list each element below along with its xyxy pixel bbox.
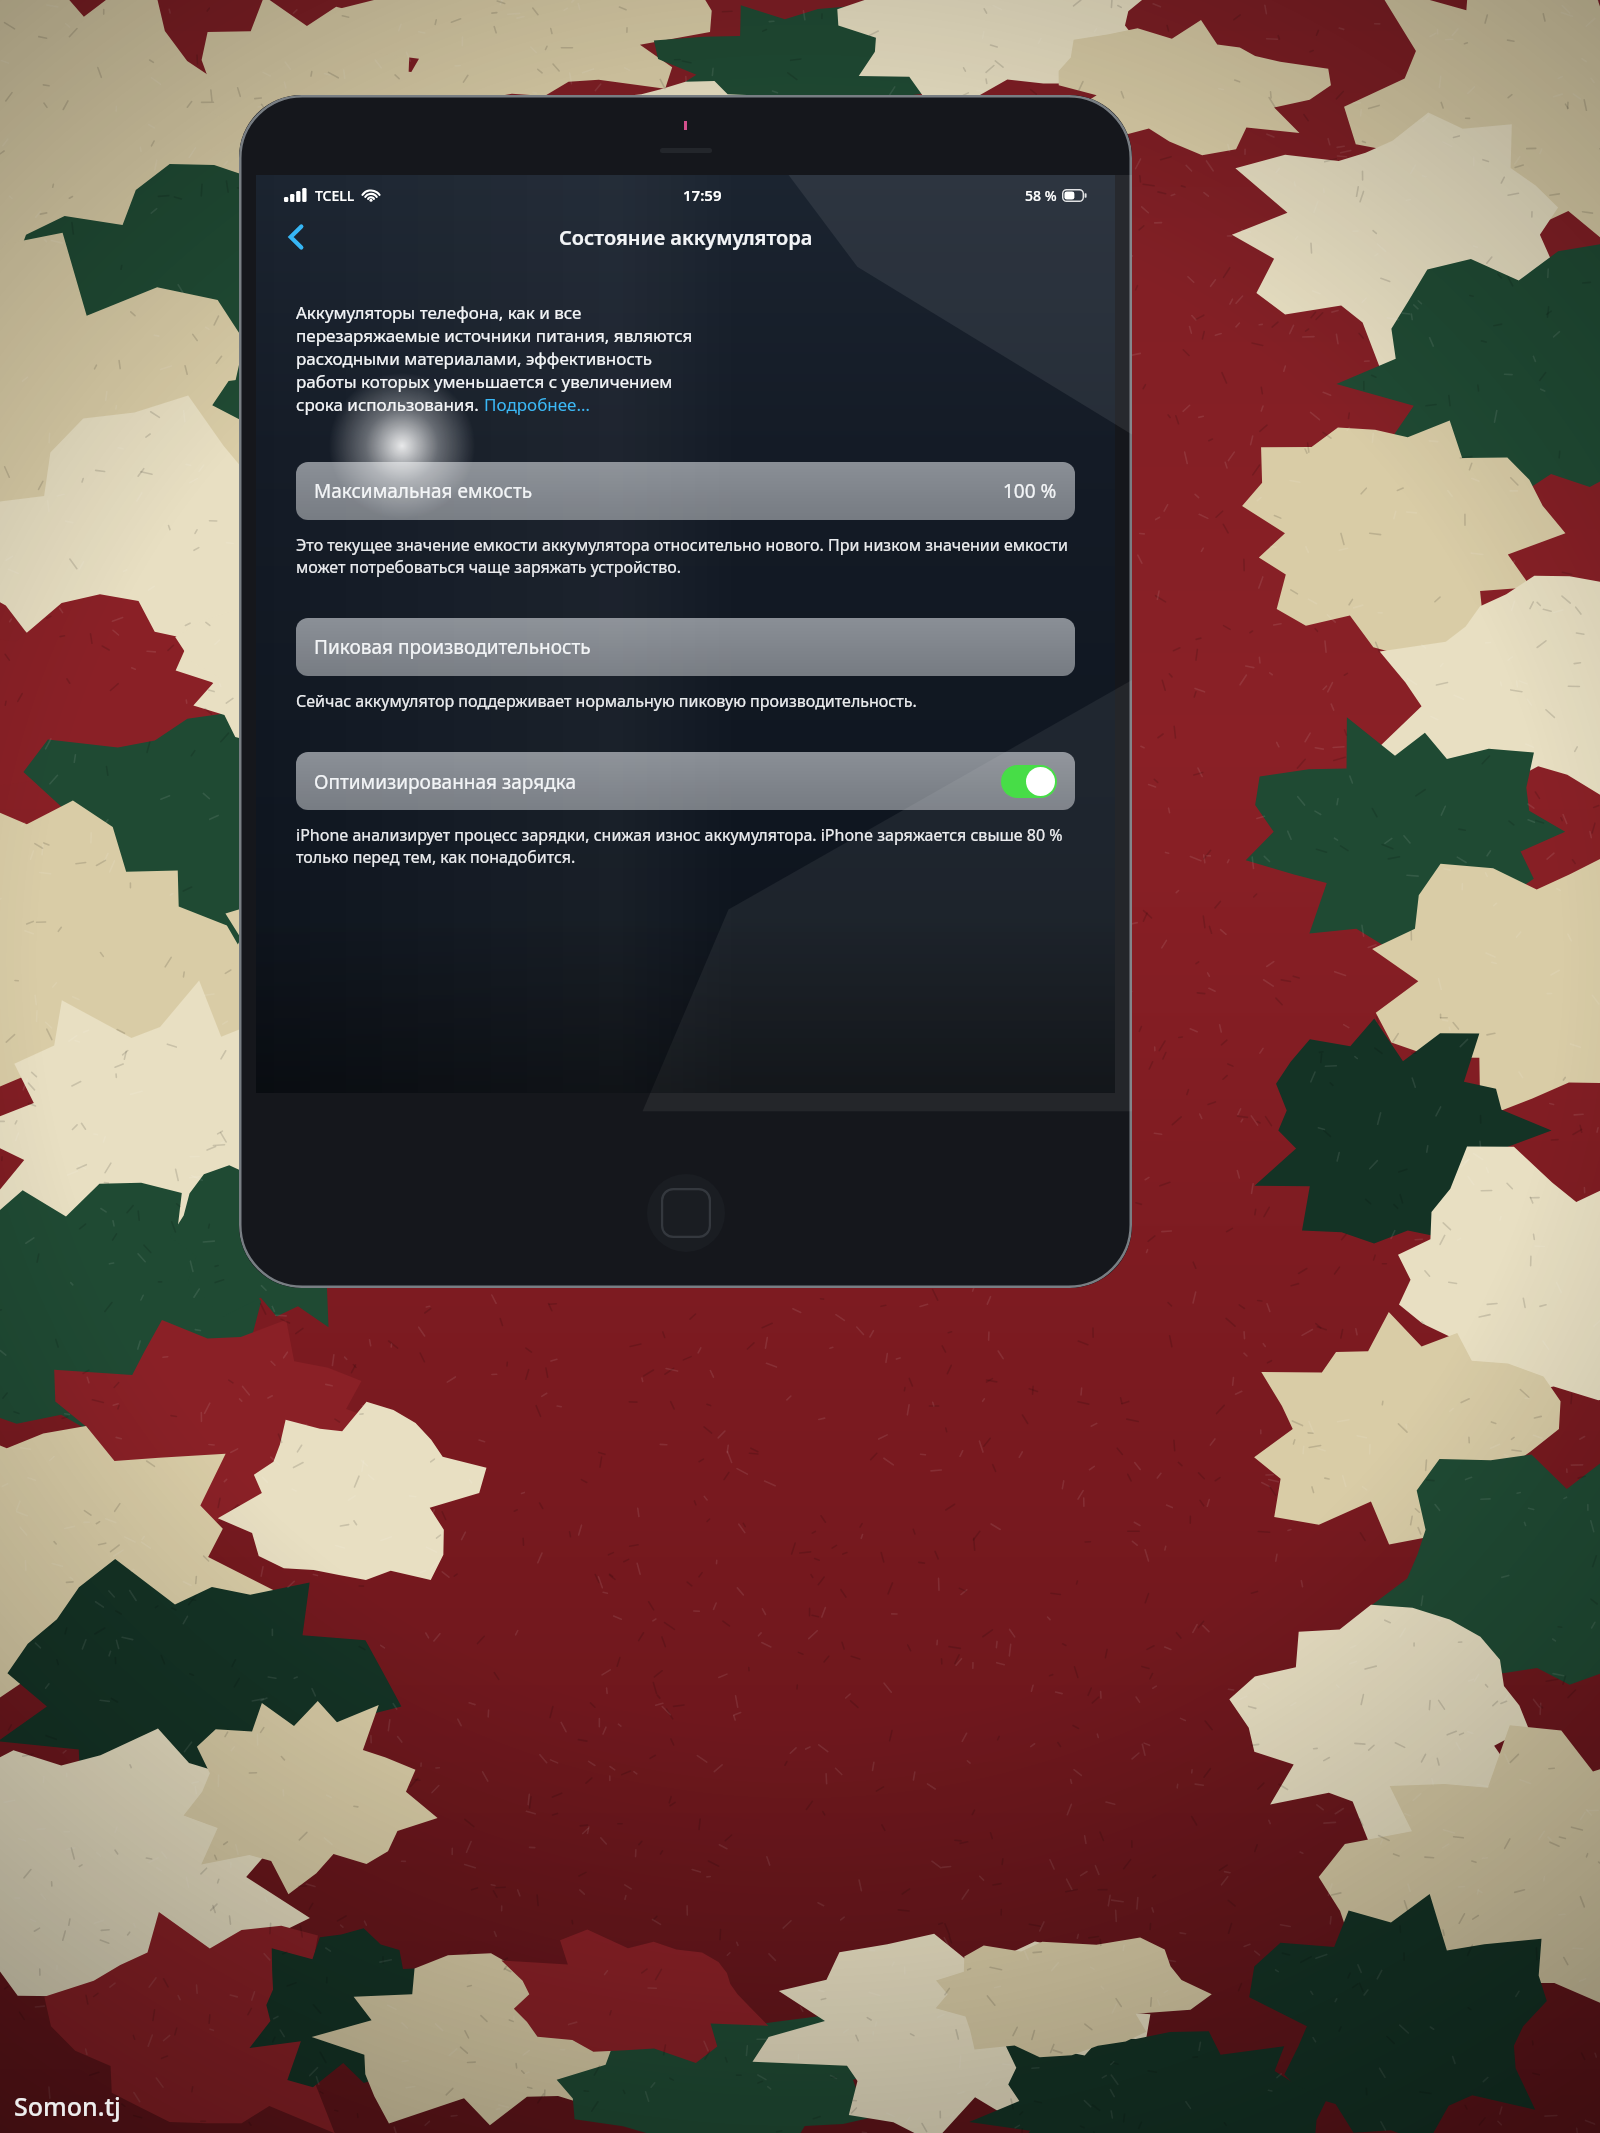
staticText: Оптимизированная зарядка: [314, 769, 576, 795]
button[interactable]: Оптимизированная зарядка: [296, 752, 1075, 810]
staticText: 58 %: [1025, 186, 1057, 205]
staticText: Состояние аккумулятора: [559, 224, 813, 251]
staticText: 100 %: [1003, 478, 1057, 504]
staticText: Аккумуляторы телефона, как и все: [296, 301, 582, 324]
staticText: срока использования.: [296, 393, 484, 416]
staticText: TCELL: [315, 186, 355, 205]
staticText: Подробнее…: [484, 393, 590, 416]
button[interactable]: Optimised charging on: [1001, 765, 1057, 798]
button[interactable]: Back: [274, 217, 318, 257]
staticText: Somon.tj: [14, 2089, 121, 2123]
staticText: 17:59: [683, 185, 722, 205]
staticText: расходными материалами, эффективность: [296, 347, 652, 370]
staticText: Максимальная емкость: [314, 478, 533, 504]
button[interactable]: Пиковая производительность: [296, 618, 1075, 676]
staticText: Сейчас аккумулятор поддерживает нормальн…: [296, 690, 917, 712]
button[interactable]: Подробнее…: [484, 393, 590, 416]
staticText: Это текущее значение емкости аккумулятор…: [296, 534, 1075, 578]
staticText: Пиковая производительность: [314, 634, 591, 660]
staticText: перезаряжаемые источники питания, являют…: [296, 324, 693, 347]
staticText: работы которых уменьшается с увеличением: [296, 370, 673, 393]
button[interactable]: Максимальная емкость: [296, 462, 1075, 520]
button[interactable]: Home: [647, 1174, 725, 1252]
staticText: iPhone анализирует процесс зарядки, сниж…: [296, 824, 1075, 868]
